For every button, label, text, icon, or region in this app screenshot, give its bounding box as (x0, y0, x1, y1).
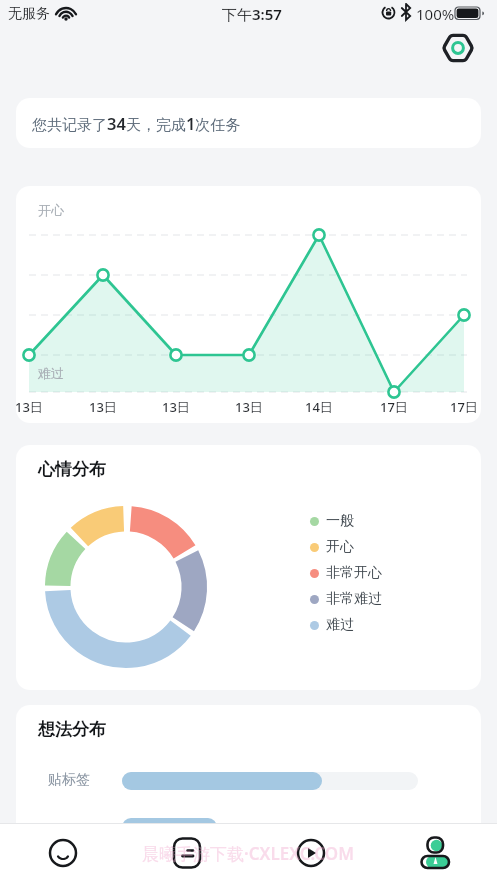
staticText: 一般 (326, 512, 354, 530)
button[interactable] (441, 31, 475, 65)
button[interactable]: 您共记录了34天，完成1次任务 (16, 98, 481, 148)
staticText: 非常难过 (326, 590, 382, 608)
staticText: 13日 (89, 398, 117, 416)
staticText: 晨曦手游下载·CXLEXC.COM (142, 842, 355, 865)
staticText: 非常开心 (326, 564, 382, 582)
staticText: 想法分布 (38, 719, 106, 740)
staticText: 14日 (305, 398, 333, 416)
staticText: 17日 (450, 398, 478, 416)
staticText: 100% (416, 4, 455, 24)
staticText: 您共记录了34天，完成1次任务 (32, 112, 241, 134)
staticText: 13日 (16, 398, 43, 416)
button[interactable] (373, 823, 497, 883)
staticText: 开心 (326, 538, 354, 556)
staticText: 开心 (38, 202, 64, 218)
staticText: 13日 (235, 398, 263, 416)
staticText: 心情分布 (38, 459, 106, 480)
staticText: 下午3:57 (222, 4, 282, 24)
button[interactable] (0, 823, 125, 883)
staticText: 难过 (326, 616, 354, 634)
staticText: 贴标签 (48, 771, 90, 789)
staticText: 无服务 (8, 5, 50, 23)
button[interactable] (249, 823, 373, 883)
staticText: 17日 (380, 398, 408, 416)
button[interactable] (125, 823, 249, 883)
staticText: 难过 (38, 365, 64, 381)
staticText: 13日 (162, 398, 190, 416)
